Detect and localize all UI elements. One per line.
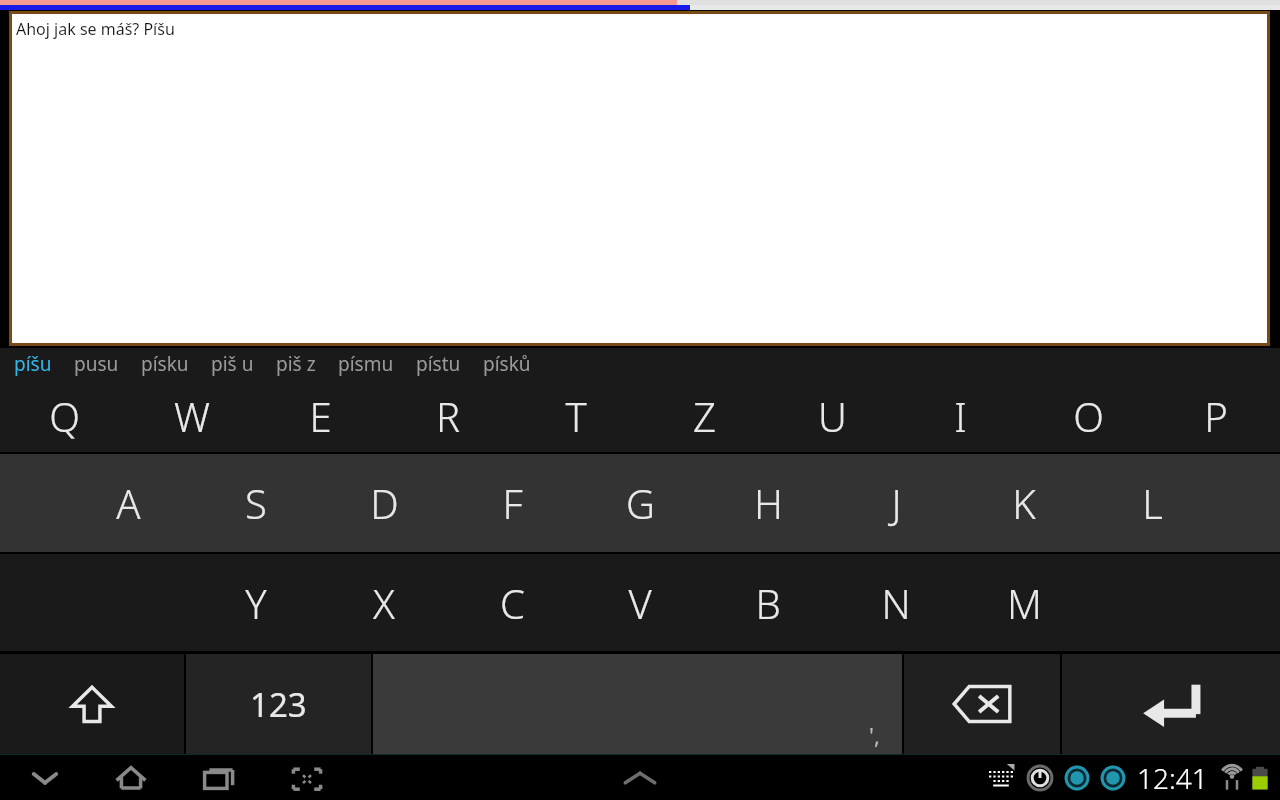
staticText: pístu	[416, 351, 461, 377]
button[interactable]: Hide keyboard	[18, 755, 72, 800]
staticText: E	[309, 389, 332, 443]
button[interactable]: Ahoj jak se máš? Píšu	[12, 14, 1267, 343]
staticText: písmu	[338, 351, 394, 377]
staticText: T	[565, 389, 587, 443]
button[interactable]: Shift	[0, 654, 184, 754]
button[interactable]: 123	[186, 654, 371, 754]
button[interactable]: P	[1152, 380, 1280, 452]
button[interactable]: O	[1024, 380, 1152, 452]
staticText: Q	[49, 389, 80, 443]
button[interactable]: B	[704, 554, 832, 651]
button[interactable]: F	[448, 454, 576, 552]
button[interactable]: Y	[192, 554, 320, 651]
button[interactable]: písků	[483, 348, 531, 380]
staticText: F	[502, 476, 523, 530]
button[interactable]: C	[448, 554, 576, 651]
staticText: Z	[693, 389, 716, 443]
staticText: R	[436, 389, 460, 443]
button[interactable]: E	[256, 380, 384, 452]
button[interactable]: H	[704, 454, 832, 552]
button[interactable]: písmu	[338, 348, 394, 380]
button[interactable]: T	[512, 380, 640, 452]
staticText: píšu	[14, 351, 52, 377]
button[interactable]: Z	[640, 380, 768, 452]
staticText: A	[116, 476, 141, 530]
staticText: ',	[869, 720, 880, 750]
button[interactable]: M	[960, 554, 1088, 651]
staticText: O	[1073, 389, 1104, 443]
button[interactable]: I	[896, 380, 1024, 452]
button[interactable]: piš z	[276, 348, 316, 380]
staticText: X	[373, 576, 395, 630]
button[interactable]: W	[128, 380, 256, 452]
button[interactable]: D	[320, 454, 448, 552]
staticText: H	[754, 476, 783, 530]
button[interactable]: Expand	[610, 755, 670, 800]
staticText: písku	[141, 351, 189, 377]
button[interactable]: Home	[104, 755, 158, 800]
staticText: C	[500, 576, 525, 630]
staticText: B	[755, 576, 781, 630]
button[interactable]: Recent apps	[192, 755, 246, 800]
button[interactable]: pusu	[74, 348, 119, 380]
button[interactable]: Q	[0, 380, 128, 452]
button[interactable]: G	[576, 454, 704, 552]
staticText: piš z	[276, 351, 316, 377]
staticText: 12:41	[1137, 759, 1208, 797]
staticText: K	[1012, 476, 1036, 530]
button[interactable]: R	[384, 380, 512, 452]
button[interactable]: píšu	[14, 348, 52, 380]
button[interactable]: Power	[1023, 761, 1057, 795]
button[interactable]: piš u	[211, 348, 254, 380]
staticText: W	[174, 389, 210, 443]
button[interactable]: Enter	[1062, 654, 1280, 754]
button[interactable]: U	[768, 380, 896, 452]
button[interactable]: L	[1088, 454, 1216, 552]
button[interactable]: S	[192, 454, 320, 552]
button[interactable]: Backspace	[904, 654, 1060, 754]
staticText: G	[626, 476, 655, 530]
staticText: písků	[483, 351, 531, 377]
staticText: Ahoj jak se máš? Píšu	[16, 18, 175, 40]
staticText: S	[245, 476, 267, 530]
staticText: N	[881, 576, 911, 630]
staticText: 123	[250, 682, 307, 727]
staticText: D	[370, 476, 399, 530]
button[interactable]: J	[832, 454, 960, 552]
staticText: P	[1204, 389, 1228, 443]
staticText: piš u	[211, 351, 254, 377]
staticText: U	[818, 389, 847, 443]
staticText: L	[1142, 476, 1163, 530]
staticText: J	[891, 476, 902, 530]
staticText: Y	[245, 576, 267, 630]
button[interactable]: pístu	[416, 348, 461, 380]
staticText: pusu	[74, 351, 119, 377]
button[interactable]: X	[320, 554, 448, 651]
staticText: V	[628, 576, 652, 630]
staticText: M	[1007, 576, 1042, 630]
button[interactable]: K	[960, 454, 1088, 552]
button[interactable]: Keyboard	[983, 760, 1019, 796]
button[interactable]: A	[64, 454, 192, 552]
button[interactable]: písku	[141, 348, 189, 380]
button[interactable]: V	[576, 554, 704, 651]
staticText: I	[954, 389, 967, 443]
button[interactable]: Screenshot	[280, 755, 334, 800]
button[interactable]: N	[832, 554, 960, 651]
